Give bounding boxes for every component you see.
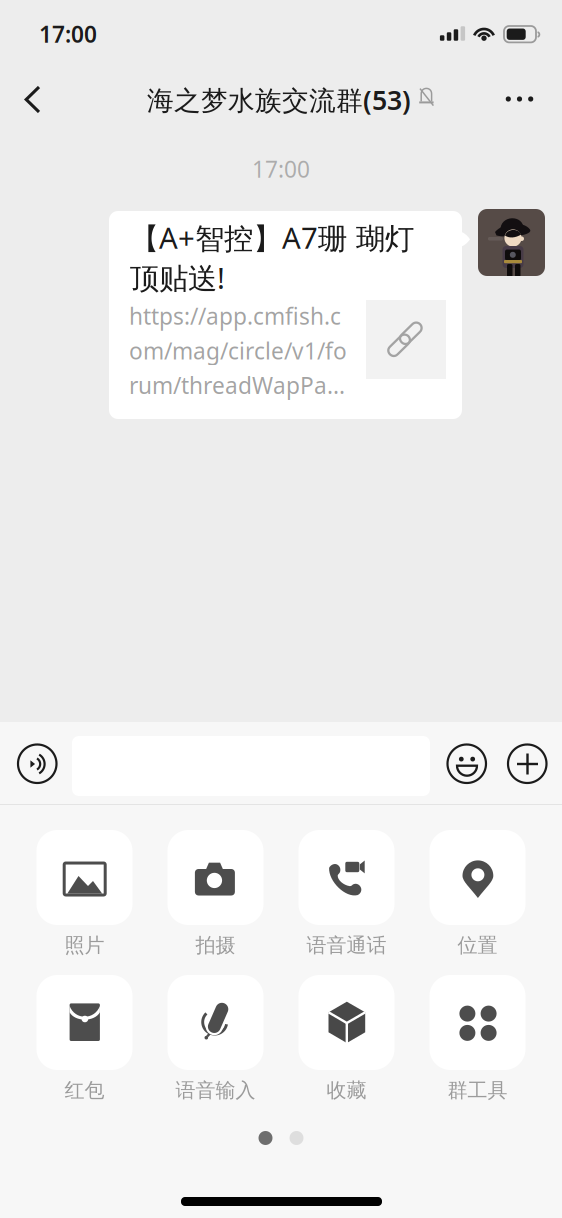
staticText: 位置 [457,933,497,958]
staticText: 17:00 [252,154,310,184]
staticText: https://app.cmfish.c [129,301,341,331]
button[interactable]: More options [494,729,556,799]
staticText: 照片 [64,933,104,958]
staticText: 语音输入 [175,1078,255,1103]
staticText: 17:00 [39,19,97,49]
staticText: 顶贴送! [130,258,225,297]
button[interactable]: Emoji [435,729,497,799]
staticText: rum/threadWapPa... [129,370,345,400]
staticText: 群工具 [447,1078,507,1103]
button[interactable]: 群工具 [412,975,543,1103]
staticText: 红包 [64,1078,104,1103]
button[interactable]: Voice message [5,729,67,799]
button[interactable]: 红包 [19,975,150,1103]
button[interactable]: More [494,69,552,129]
staticText: 语音通话 [306,933,386,958]
button[interactable]: 语音输入 [150,975,281,1103]
button[interactable]: 收藏 [281,975,412,1103]
button[interactable]: 拍摄 [150,830,281,958]
button[interactable]: 位置 [412,830,543,958]
staticText: 收藏 [326,1078,366,1103]
button[interactable]: Back [18,69,76,129]
button[interactable]: 语音通话 [281,830,412,958]
staticText: 海之梦水族交流群(53) [147,82,411,117]
staticText: om/mag/circle/v1/fo [129,336,347,366]
button[interactable]: 照片 [19,830,150,958]
staticText: 拍摄 [195,933,235,958]
staticText: 【A+智控】A7珊 瑚灯 [130,218,414,257]
